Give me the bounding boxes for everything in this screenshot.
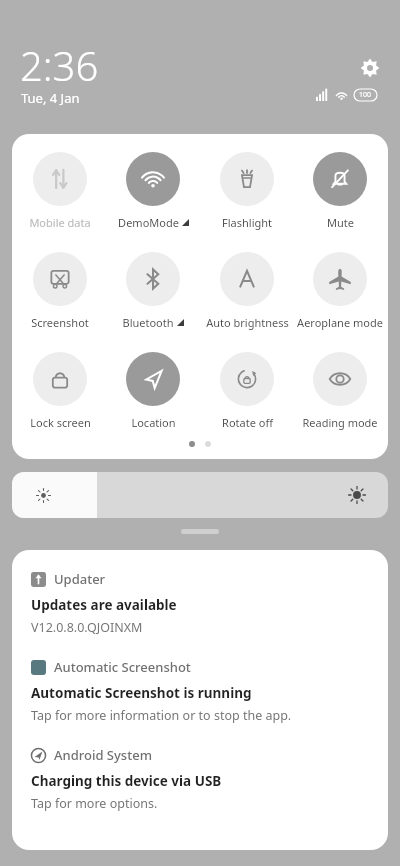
staticText: Automatic Screenshot [54, 658, 191, 676]
staticText: Location [131, 415, 176, 430]
staticText: DemoMode [118, 215, 179, 230]
button[interactable]: Settings [356, 54, 384, 82]
button[interactable]: Rotate off [201, 352, 293, 430]
button[interactable]: Mute [294, 152, 386, 230]
staticText: Lock screen [30, 415, 91, 430]
button[interactable]: Bluetooth [107, 252, 199, 330]
staticText: Auto brightness [206, 315, 289, 330]
button[interactable]: Reading mode [294, 352, 386, 430]
staticText: Mobile data [29, 215, 91, 230]
staticText: V12.0.8.0.QJOINXM [31, 619, 143, 636]
button[interactable] [12, 472, 388, 518]
staticText: Flashlight [222, 215, 272, 230]
staticText: Rotate off [222, 415, 273, 430]
staticText: Automatic Screenshot is running [31, 684, 252, 702]
staticText: Charging this device via USB [31, 772, 222, 790]
button[interactable]: DemoMode [107, 152, 199, 230]
button[interactable]: Screenshot [14, 252, 106, 330]
staticText: Bluetooth [122, 315, 174, 330]
staticText: Android System [54, 746, 152, 764]
staticText: Screenshot [31, 315, 89, 330]
staticText: 2:36 [20, 38, 99, 92]
button[interactable]: Lock screen [14, 352, 106, 430]
staticText: Updater [54, 570, 106, 588]
button[interactable]: Automatic Screenshot [31, 658, 372, 724]
button[interactable]: Android System [31, 746, 372, 812]
button[interactable]: Auto brightness [201, 252, 293, 330]
staticText: Tap for more options. [31, 795, 158, 812]
staticText: Tue, 4 Jan [21, 89, 80, 107]
staticText: 100 [359, 90, 372, 100]
staticText: Updates are available [31, 596, 177, 614]
button[interactable]: Flashlight [201, 152, 293, 230]
staticText: Tap for more information or to stop the … [31, 707, 292, 724]
button[interactable]: Mobile data [14, 152, 106, 230]
button[interactable]: Aeroplane mode [294, 252, 386, 330]
staticText: Aeroplane mode [297, 315, 383, 330]
button[interactable]: Updater [31, 570, 372, 636]
staticText: Reading mode [302, 415, 378, 430]
button[interactable]: Location [107, 352, 199, 430]
staticText: Mute [327, 215, 354, 230]
